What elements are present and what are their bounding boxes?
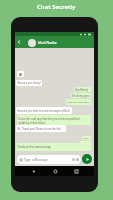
button[interactable]: sure xyxy=(82,136,91,140)
staticText: How are you doing? xyxy=(17,81,41,85)
staticText: Hey Manoj xyxy=(75,88,90,92)
staticText: How are you able to send messages offlin… xyxy=(17,109,71,113)
button[interactable]: Ok, Thank you! Please share the link xyxy=(16,125,66,132)
staticText: I have this cool app that lets you send … xyxy=(18,117,90,124)
button[interactable]: Recents xyxy=(72,167,80,175)
button[interactable]: Back xyxy=(29,167,37,175)
staticText: Moti Nadar xyxy=(38,40,58,45)
staticText: Chat Secretly xyxy=(37,3,76,11)
button[interactable]: Home xyxy=(51,167,59,175)
button[interactable]: Type a Message xyxy=(17,155,81,164)
staticText: Checkout this awesome app xyxy=(17,145,90,149)
button[interactable]: Contact photo xyxy=(28,39,36,47)
button[interactable]: Back xyxy=(16,39,22,45)
button[interactable]: Send xyxy=(82,154,92,164)
staticText: I'm doing good xyxy=(72,94,90,98)
button[interactable]: How are you able to send messages offlin… xyxy=(16,107,72,114)
button[interactable]: I'm doing good xyxy=(71,93,91,98)
staticText: How are things with you xyxy=(67,101,90,104)
staticText: sure xyxy=(83,137,90,140)
button[interactable]: Hey Manoj xyxy=(74,87,91,92)
staticText: Ok, Thank you! Please share the link xyxy=(17,127,65,131)
staticText: Type a Message xyxy=(24,158,48,162)
button[interactable]: I have this cool app that lets you send … xyxy=(17,115,91,125)
button[interactable]: Checkout this awesome app xyxy=(16,143,91,151)
button[interactable]: How are you doing? xyxy=(16,80,42,86)
button[interactable]: How are things with you xyxy=(66,99,91,105)
